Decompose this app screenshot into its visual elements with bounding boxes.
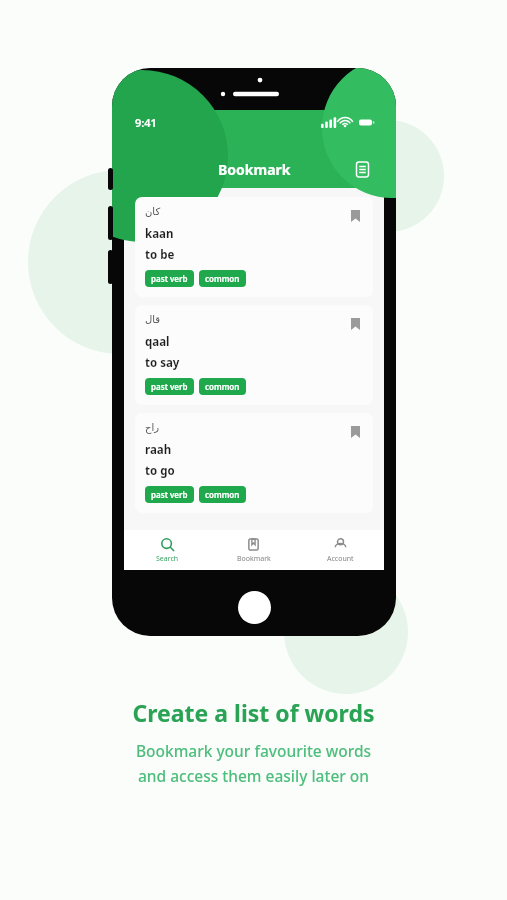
- staticText: common: [205, 489, 240, 500]
- button[interactable]: Remove bookmark: [345, 206, 365, 226]
- staticText: past verb: [151, 381, 188, 392]
- button[interactable]: Bookmark: [210, 530, 297, 570]
- button[interactable]: قال: [135, 305, 373, 405]
- staticText: qaal: [145, 334, 170, 350]
- button[interactable]: past verb: [145, 378, 194, 395]
- staticText: past verb: [151, 273, 188, 284]
- staticText: Bookmark your favourite words: [0, 740, 507, 761]
- button[interactable]: كان: [135, 197, 373, 297]
- button[interactable]: past verb: [145, 270, 194, 287]
- button[interactable]: Word list: [349, 156, 375, 182]
- button[interactable]: Remove bookmark: [345, 314, 365, 334]
- staticText: to be: [145, 247, 175, 263]
- button[interactable]: common: [199, 378, 246, 395]
- staticText: common: [205, 381, 240, 392]
- staticText: common: [205, 273, 240, 284]
- staticText: to say: [145, 355, 180, 371]
- staticText: past verb: [151, 489, 188, 500]
- staticText: Bookmark: [237, 554, 271, 564]
- button[interactable]: Home: [238, 591, 271, 624]
- staticText: Account: [327, 554, 354, 564]
- button[interactable]: common: [199, 270, 246, 287]
- staticText: 9:41: [135, 115, 157, 130]
- staticText: Create a list of words: [0, 697, 507, 728]
- button[interactable]: past verb: [145, 486, 194, 503]
- staticText: Bookmark: [218, 160, 291, 179]
- staticText: قال: [145, 314, 161, 326]
- staticText: Search: [156, 554, 179, 564]
- staticText: raah: [145, 442, 172, 458]
- button[interactable]: common: [199, 486, 246, 503]
- staticText: kaan: [145, 226, 174, 242]
- staticText: and access them easily later on: [0, 765, 507, 786]
- button[interactable]: Search: [124, 530, 210, 570]
- button[interactable]: Remove bookmark: [345, 422, 365, 442]
- button[interactable]: راح: [135, 413, 373, 513]
- staticText: راح: [145, 422, 160, 434]
- button[interactable]: Account: [297, 530, 384, 570]
- staticText: كان: [145, 206, 161, 218]
- staticText: to go: [145, 463, 175, 479]
